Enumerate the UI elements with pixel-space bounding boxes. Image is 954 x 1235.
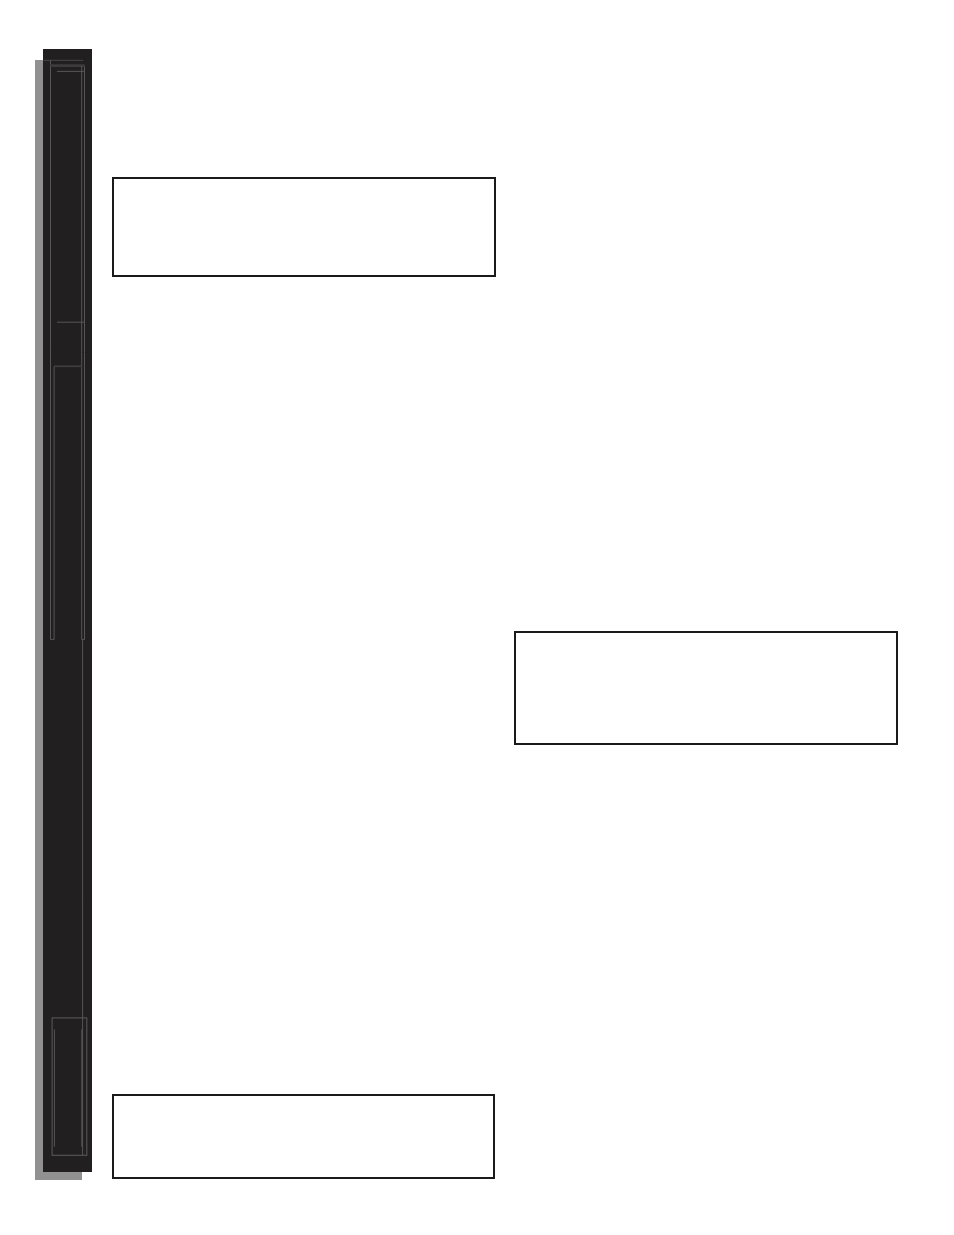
button[interactable]: Open card one [112, 177, 496, 277]
button[interactable]: Open card two [514, 631, 898, 745]
button[interactable]: Bottom navigation bar [43, 1040, 92, 1172]
button[interactable]: Open card three [112, 1094, 495, 1179]
button[interactable]: Top app bar [43, 49, 92, 71]
button[interactable]: List item one [43, 71, 92, 322]
button[interactable]: List item two [43, 322, 92, 661]
